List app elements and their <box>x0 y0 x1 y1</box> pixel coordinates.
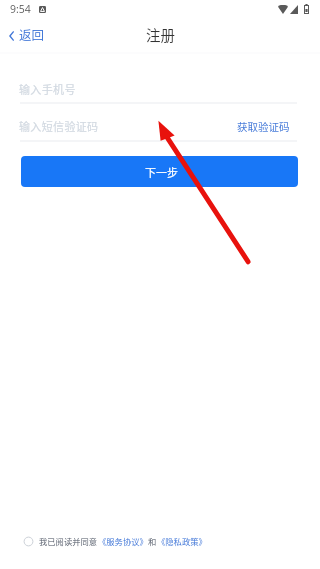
button[interactable]: 下一步 <box>21 156 298 187</box>
button[interactable]: Agree to terms checkbox <box>23 536 34 547</box>
staticText: 获取验证码 <box>237 119 290 134</box>
staticText: 《隐私政策》 <box>157 535 207 547</box>
button[interactable]: 《服务协议》 <box>98 535 148 547</box>
staticText: 9:54 <box>10 2 31 16</box>
staticText: 输入手机号 <box>19 81 76 97</box>
staticText: 《服务协议》 <box>98 535 148 547</box>
staticText: 下一步 <box>145 164 178 180</box>
staticText: 我已阅读并同意 <box>39 535 98 547</box>
staticText: 返回 <box>19 25 45 43</box>
staticText: 和 <box>148 535 157 547</box>
staticText: 注册 <box>146 24 175 45</box>
button[interactable]: 获取验证码 <box>231 113 296 140</box>
staticText: 输入短信验证码 <box>19 118 99 134</box>
button[interactable]: 返回 <box>0 21 55 51</box>
button[interactable]: 《隐私政策》 <box>157 535 207 547</box>
